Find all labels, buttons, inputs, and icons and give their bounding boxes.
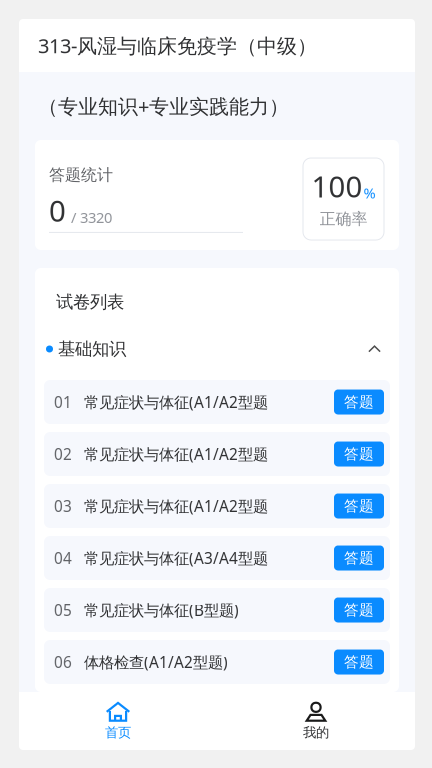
staticText: 常见症状与体征(A1/A2型题: [84, 392, 268, 412]
staticText: 答题统计: [49, 165, 113, 185]
button[interactable]: 我的: [217, 693, 415, 749]
button[interactable]: 06: [35, 640, 399, 684]
staticText: 答题: [344, 549, 374, 567]
staticText: 答题: [344, 653, 374, 671]
staticText: 答题: [344, 393, 374, 411]
staticText: 首页: [105, 724, 131, 741]
button[interactable]: 首页: [19, 693, 217, 749]
staticText: 答题: [344, 497, 374, 515]
staticText: 正确率: [319, 209, 367, 229]
staticText: 试卷列表: [56, 291, 124, 313]
button[interactable]: 02: [35, 432, 399, 476]
staticText: 答题: [344, 601, 374, 619]
button[interactable]: 04: [35, 536, 399, 580]
staticText: 常见症状与体征(B型题): [84, 600, 239, 620]
staticText: %: [363, 183, 375, 202]
staticText: 01: [54, 392, 72, 412]
staticText: 03: [54, 496, 72, 516]
staticText: 06: [54, 652, 72, 672]
staticText: （专业知识+专业实践能力）: [38, 93, 289, 119]
staticText: 0: [49, 191, 66, 230]
staticText: 常见症状与体征(A1/A2型题: [84, 496, 268, 516]
staticText: 我的: [303, 724, 329, 741]
button[interactable]: 01: [35, 380, 399, 424]
staticText: 答题: [344, 445, 374, 463]
staticText: 常见症状与体征(A3/A4型题: [84, 548, 268, 568]
staticText: 100: [311, 166, 362, 205]
button[interactable]: 05: [35, 588, 399, 632]
button[interactable]: 基础知识: [35, 336, 399, 362]
button[interactable]: 03: [35, 484, 399, 528]
staticText: 05: [54, 600, 72, 620]
staticText: 313-风湿与临床免疫学（中级）: [38, 32, 317, 59]
staticText: 体格检查(A1/A2型题): [84, 652, 228, 672]
staticText: 04: [54, 548, 72, 568]
staticText: 基础知识: [58, 338, 126, 360]
staticText: 02: [54, 444, 72, 464]
staticText: 常见症状与体征(A1/A2型题: [84, 444, 268, 464]
staticText: / 3320: [71, 207, 112, 227]
